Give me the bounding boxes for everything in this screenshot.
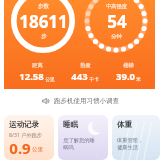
staticText: 公里 [32,146,43,153]
staticText: 距离 [32,62,43,69]
button[interactable]: 步数 18611 步 [10,0,76,54]
button[interactable]: 热量 [69,62,101,83]
staticText: 步数 [38,3,49,10]
button[interactable]: 中高强度 54 分钟 [83,0,149,54]
staticText: 健康生活 [117,144,138,151]
staticText: 跑步机使用习惯小调查 [54,97,119,105]
button[interactable]: 运动记录 [4,115,54,160]
staticText: 运动记录 [9,120,39,129]
staticText: 12.58 [19,70,44,83]
staticText: 公里 [45,76,55,82]
staticText: 39.0 [116,70,135,83]
staticText: 体重管理， [117,137,143,144]
staticText: 体重 [117,120,132,129]
staticText: 米 [136,76,141,82]
button[interactable]: 睡眠 [58,115,108,160]
staticText: 443 [71,70,88,83]
staticText: 分钟 [111,33,122,40]
button[interactable]: 楼梯 [114,62,143,83]
button[interactable]: 公告 [0,89,160,113]
button[interactable]: 体重 [112,115,160,160]
staticText: 眠吗 [63,144,74,151]
staticText: 中高强度 [106,3,127,10]
staticText: 千卡 [89,76,99,82]
staticText: 楼梯 [123,62,134,69]
staticText: 54 [107,10,127,33]
staticText: 您了解您的睡 [63,137,95,144]
staticText: 18611 [19,10,68,33]
button[interactable]: 距离 [17,62,57,83]
staticText: 睡眠 [63,120,78,129]
staticText: 8/31 户外跑步 [9,131,42,138]
other: 公告 [42,97,50,105]
staticText: 0.9 [9,138,31,155]
staticText: 热量 [80,62,91,69]
staticText: 步 [41,33,47,40]
